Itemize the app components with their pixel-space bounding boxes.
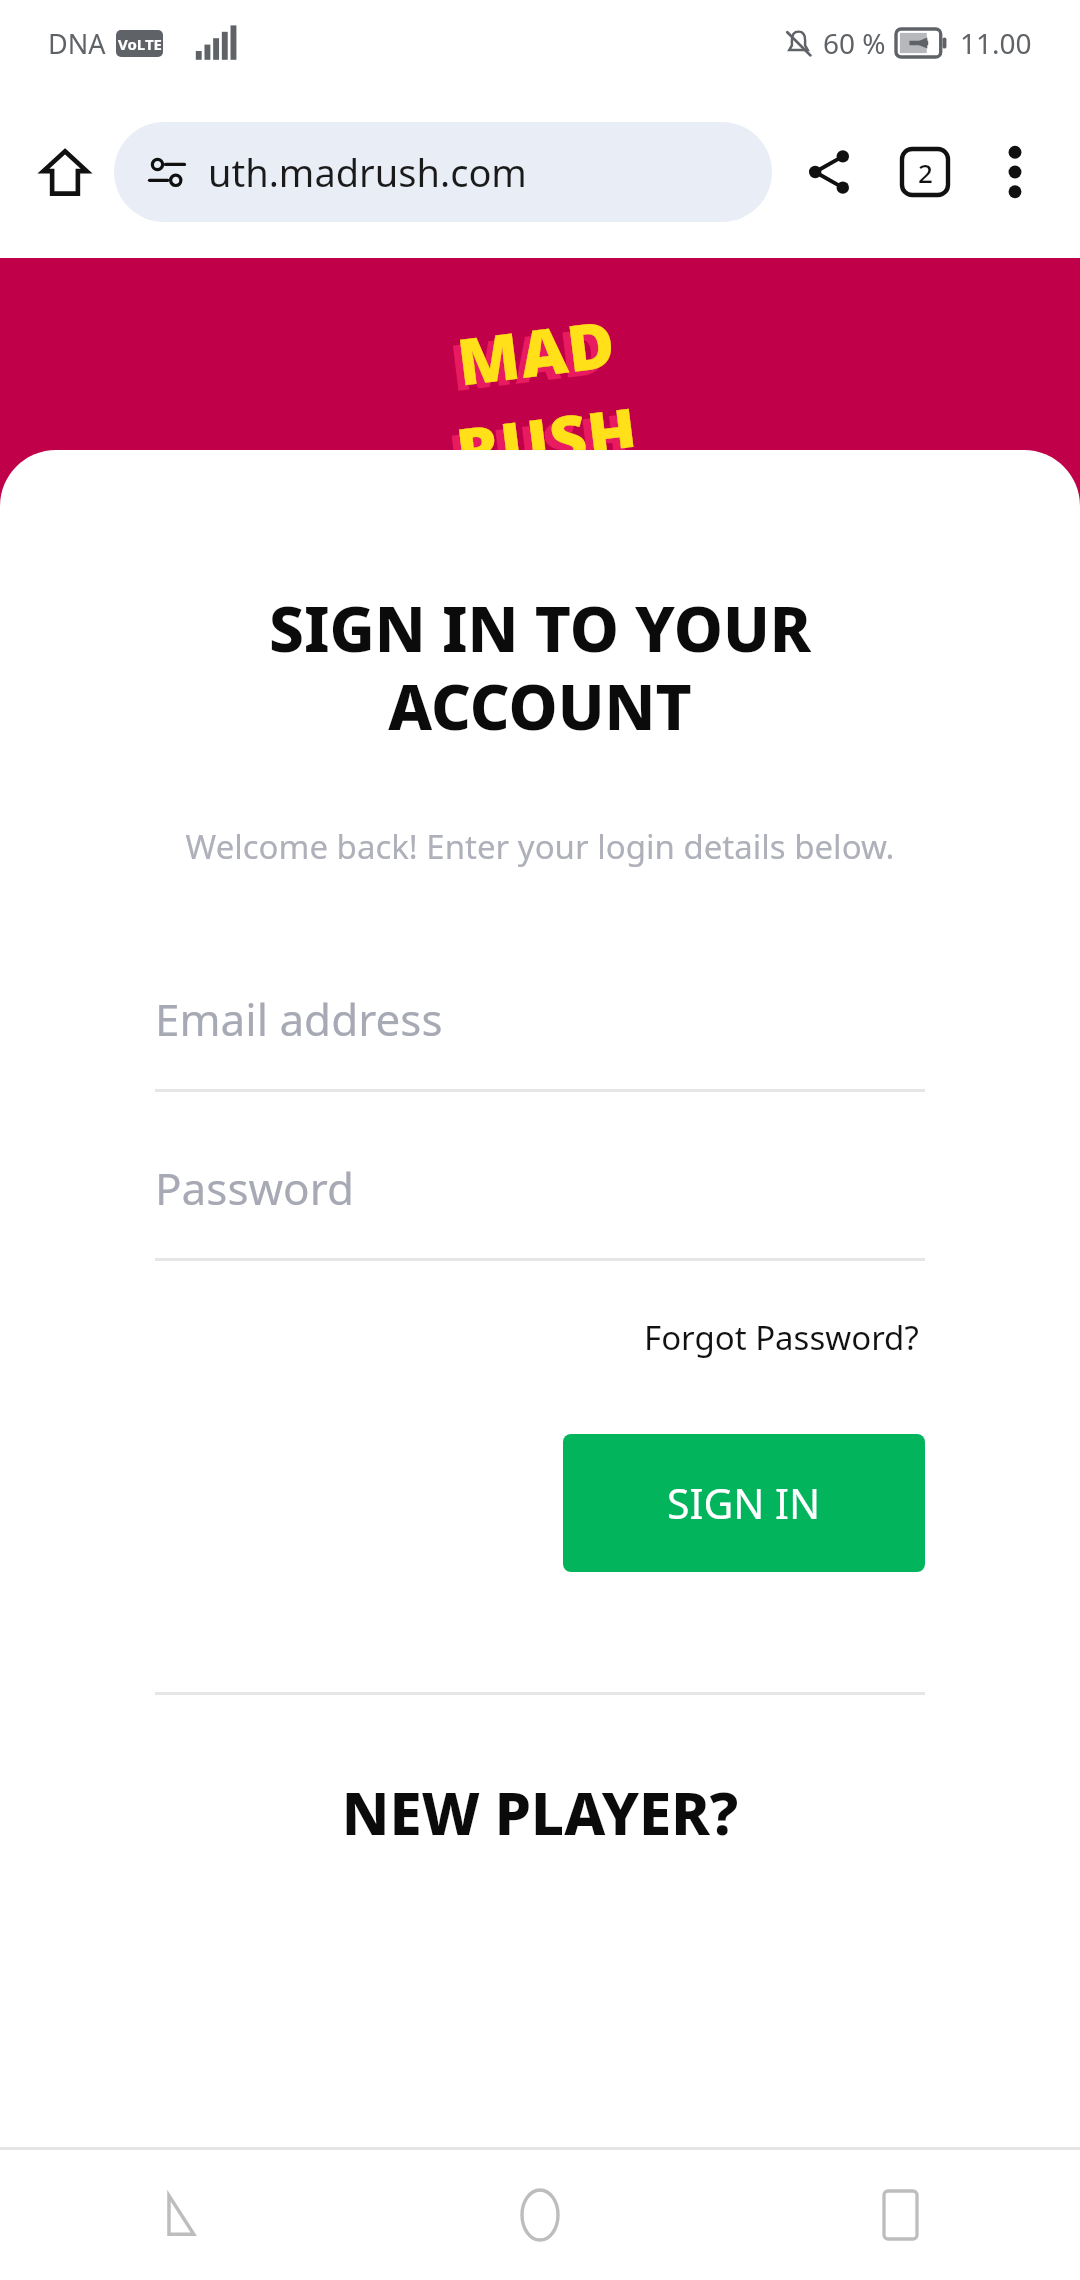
button[interactable]: Home bbox=[28, 135, 102, 209]
button[interactable]: Forgot Password? bbox=[638, 1309, 925, 1366]
staticText: Welcome back! Enter your login details b… bbox=[40, 824, 1040, 869]
staticText: DNA bbox=[48, 25, 106, 62]
staticText: SIGN IN bbox=[667, 1475, 821, 1531]
staticText: SIGN IN TO YOUR ACCOUNT bbox=[60, 586, 1020, 748]
button[interactable]: Email address bbox=[155, 973, 925, 1092]
staticText: MAD bbox=[445, 305, 613, 410]
staticText: VoLTE bbox=[118, 34, 162, 54]
button[interactable]: Open tabs: 2 bbox=[882, 129, 968, 215]
staticText: Forgot Password? bbox=[644, 1315, 919, 1360]
staticText: 11.00 bbox=[960, 24, 1032, 62]
staticText: 2 bbox=[918, 155, 933, 190]
staticText: RUSH bbox=[451, 386, 639, 468]
staticText: Password bbox=[155, 1158, 355, 1218]
button[interactable]: Back bbox=[0, 2150, 360, 2280]
staticText: MAD bbox=[452, 299, 621, 404]
button[interactable]: Password bbox=[155, 1142, 925, 1261]
staticText: Email address bbox=[155, 989, 443, 1049]
button[interactable]: uth.madrush.com bbox=[114, 122, 772, 222]
button[interactable]: More options bbox=[972, 129, 1058, 215]
staticText: uth.madrush.com bbox=[208, 146, 527, 198]
staticText: NEW PLAYER? bbox=[0, 1773, 1080, 1852]
button[interactable]: Home bbox=[360, 2150, 720, 2280]
staticText: RUSH bbox=[444, 392, 632, 474]
button[interactable]: Recent apps bbox=[720, 2150, 1080, 2280]
button[interactable]: SIGN IN bbox=[563, 1434, 925, 1572]
button[interactable]: Share bbox=[786, 129, 872, 215]
staticText: 60 % bbox=[823, 24, 886, 62]
